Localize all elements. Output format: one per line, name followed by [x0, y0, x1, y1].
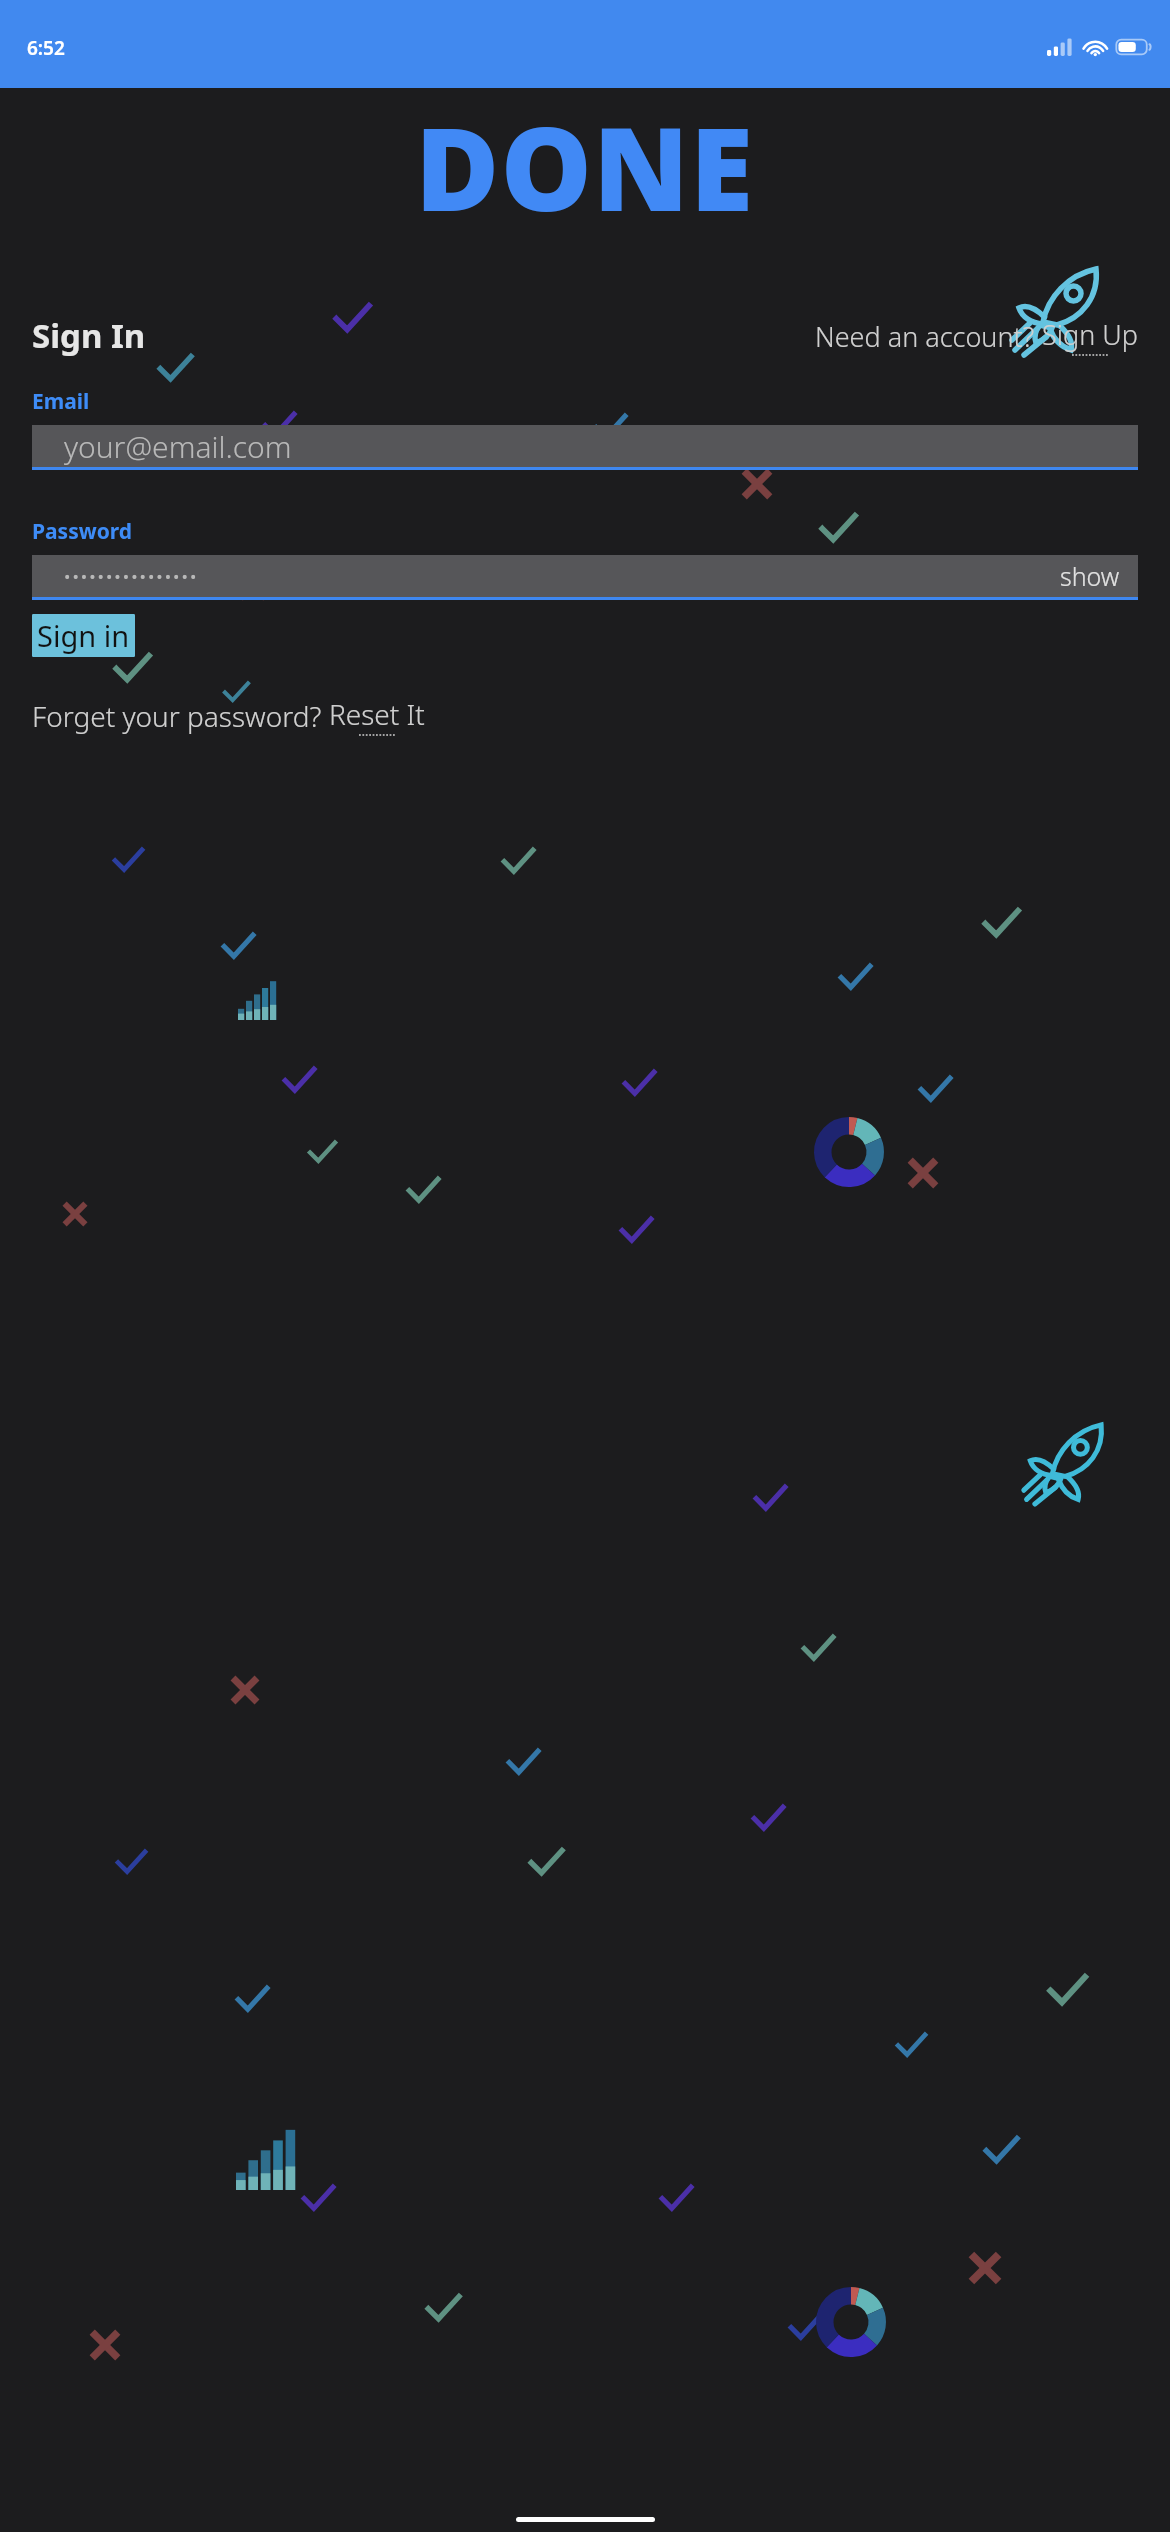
staticText: Password — [32, 517, 133, 546]
staticText: Sign Up — [1042, 316, 1138, 353]
staticText: Forget your password? — [32, 697, 329, 735]
staticText: •••••••••••••••• — [64, 565, 199, 588]
staticText: your@email.com — [64, 426, 292, 467]
button[interactable]: Sign in — [32, 614, 135, 657]
staticText: Email — [32, 387, 90, 416]
staticText: Need an account? — [815, 318, 1042, 355]
staticText: Sign In — [32, 313, 146, 358]
button[interactable]: Need an account? — [815, 316, 1138, 355]
button[interactable]: your@email.com — [32, 425, 1138, 470]
other: Home indicator — [516, 2517, 655, 2522]
staticText: Sign in — [37, 616, 130, 655]
staticText: Reset It — [329, 695, 425, 733]
staticText: show — [1060, 559, 1120, 593]
staticText: 6:52 — [27, 35, 65, 61]
button[interactable]: Sign In — [32, 313, 146, 358]
button[interactable]: show — [1060, 559, 1120, 593]
button[interactable]: •••••••••••••••• — [32, 555, 1138, 600]
button[interactable]: Forget your password? — [32, 695, 425, 735]
staticText: DONE — [415, 88, 755, 228]
